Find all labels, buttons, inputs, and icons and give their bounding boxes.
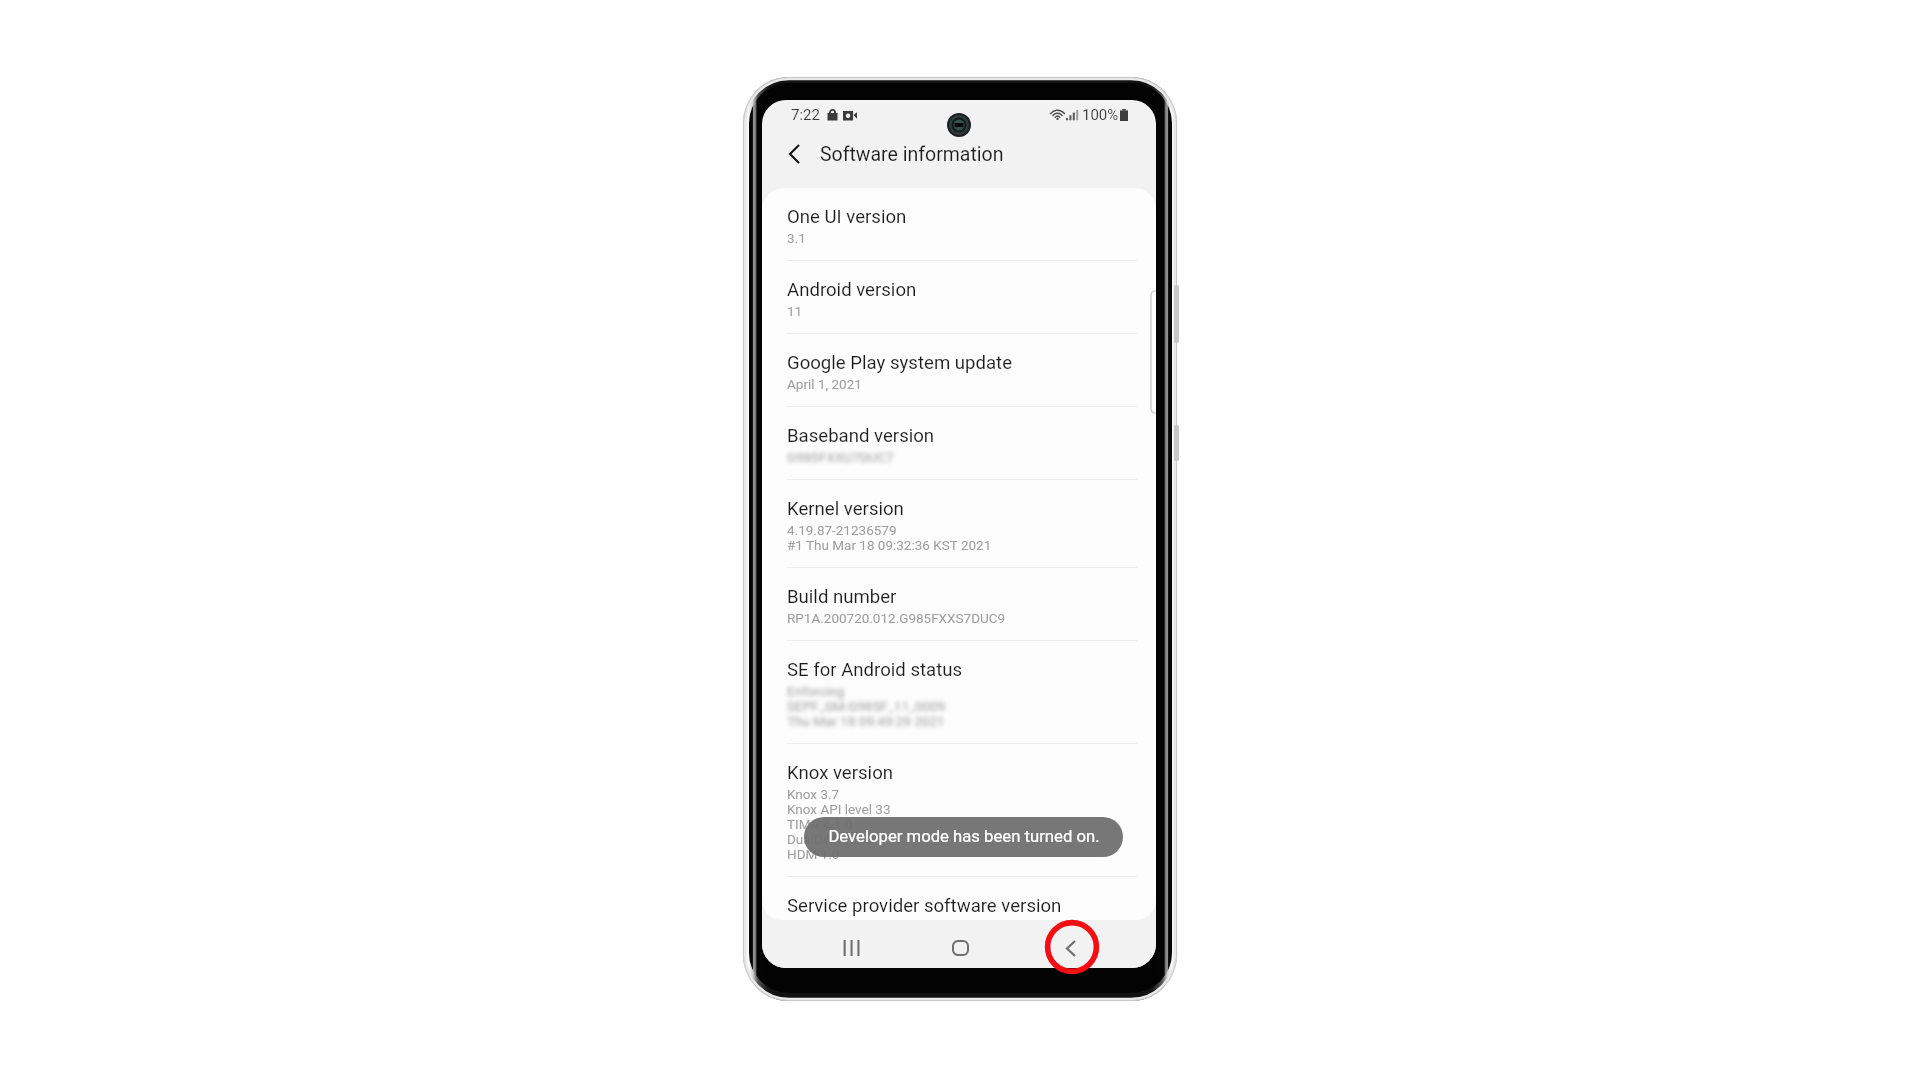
staticText: 100%: [1082, 106, 1119, 124]
button[interactable]: Service provider software version: [762, 877, 1156, 920]
button[interactable]: Back: [779, 139, 809, 169]
staticText: Knox 3.7 Knox API level 33 TIMA 4.1.0 Du…: [787, 786, 891, 862]
button[interactable]: Home: [937, 928, 983, 968]
button[interactable]: Knox version: [762, 744, 1156, 876]
button[interactable]: Google Play system update: [762, 334, 1156, 406]
staticText: 7:22: [791, 106, 820, 124]
button[interactable]: Build number: [762, 568, 1156, 640]
staticText: Enforcing SEPF_SM-G985F_11_0009 Thu Mar …: [787, 683, 946, 729]
staticText: Service provider software version: [787, 895, 1062, 917]
staticText: 3.1: [787, 230, 806, 246]
staticText: 4.19.87-21236579 #1 Thu Mar 18 09:32:36 …: [787, 522, 992, 553]
button[interactable]: Recent apps: [827, 928, 873, 968]
staticText: Kernel version: [787, 498, 904, 520]
button[interactable]: One UI version: [762, 188, 1156, 260]
staticText: SE for Android status: [787, 659, 963, 681]
button[interactable]: Baseband version: [762, 407, 1156, 479]
staticText: Knox version: [787, 762, 894, 784]
button[interactable]: Android version: [762, 261, 1156, 333]
staticText: Developer mode has been turned on.: [828, 827, 1100, 847]
button[interactable]: Back: [1048, 928, 1094, 968]
staticText: One UI version: [787, 206, 907, 228]
button[interactable]: SE for Android status: [762, 641, 1156, 743]
staticText: Software information: [820, 143, 1004, 166]
staticText: April 1, 2021: [787, 376, 862, 392]
staticText: Android version: [787, 279, 917, 301]
staticText: Build number: [787, 586, 897, 608]
staticText: G985FXXU7DUC7: [787, 449, 894, 465]
staticText: Baseband version: [787, 425, 935, 447]
staticText: RP1A.200720.012.G985FXXS7DUC9: [787, 610, 1006, 626]
button[interactable]: Kernel version: [762, 480, 1156, 567]
staticText: Google Play system update: [787, 352, 1013, 374]
staticText: 11: [787, 303, 803, 319]
